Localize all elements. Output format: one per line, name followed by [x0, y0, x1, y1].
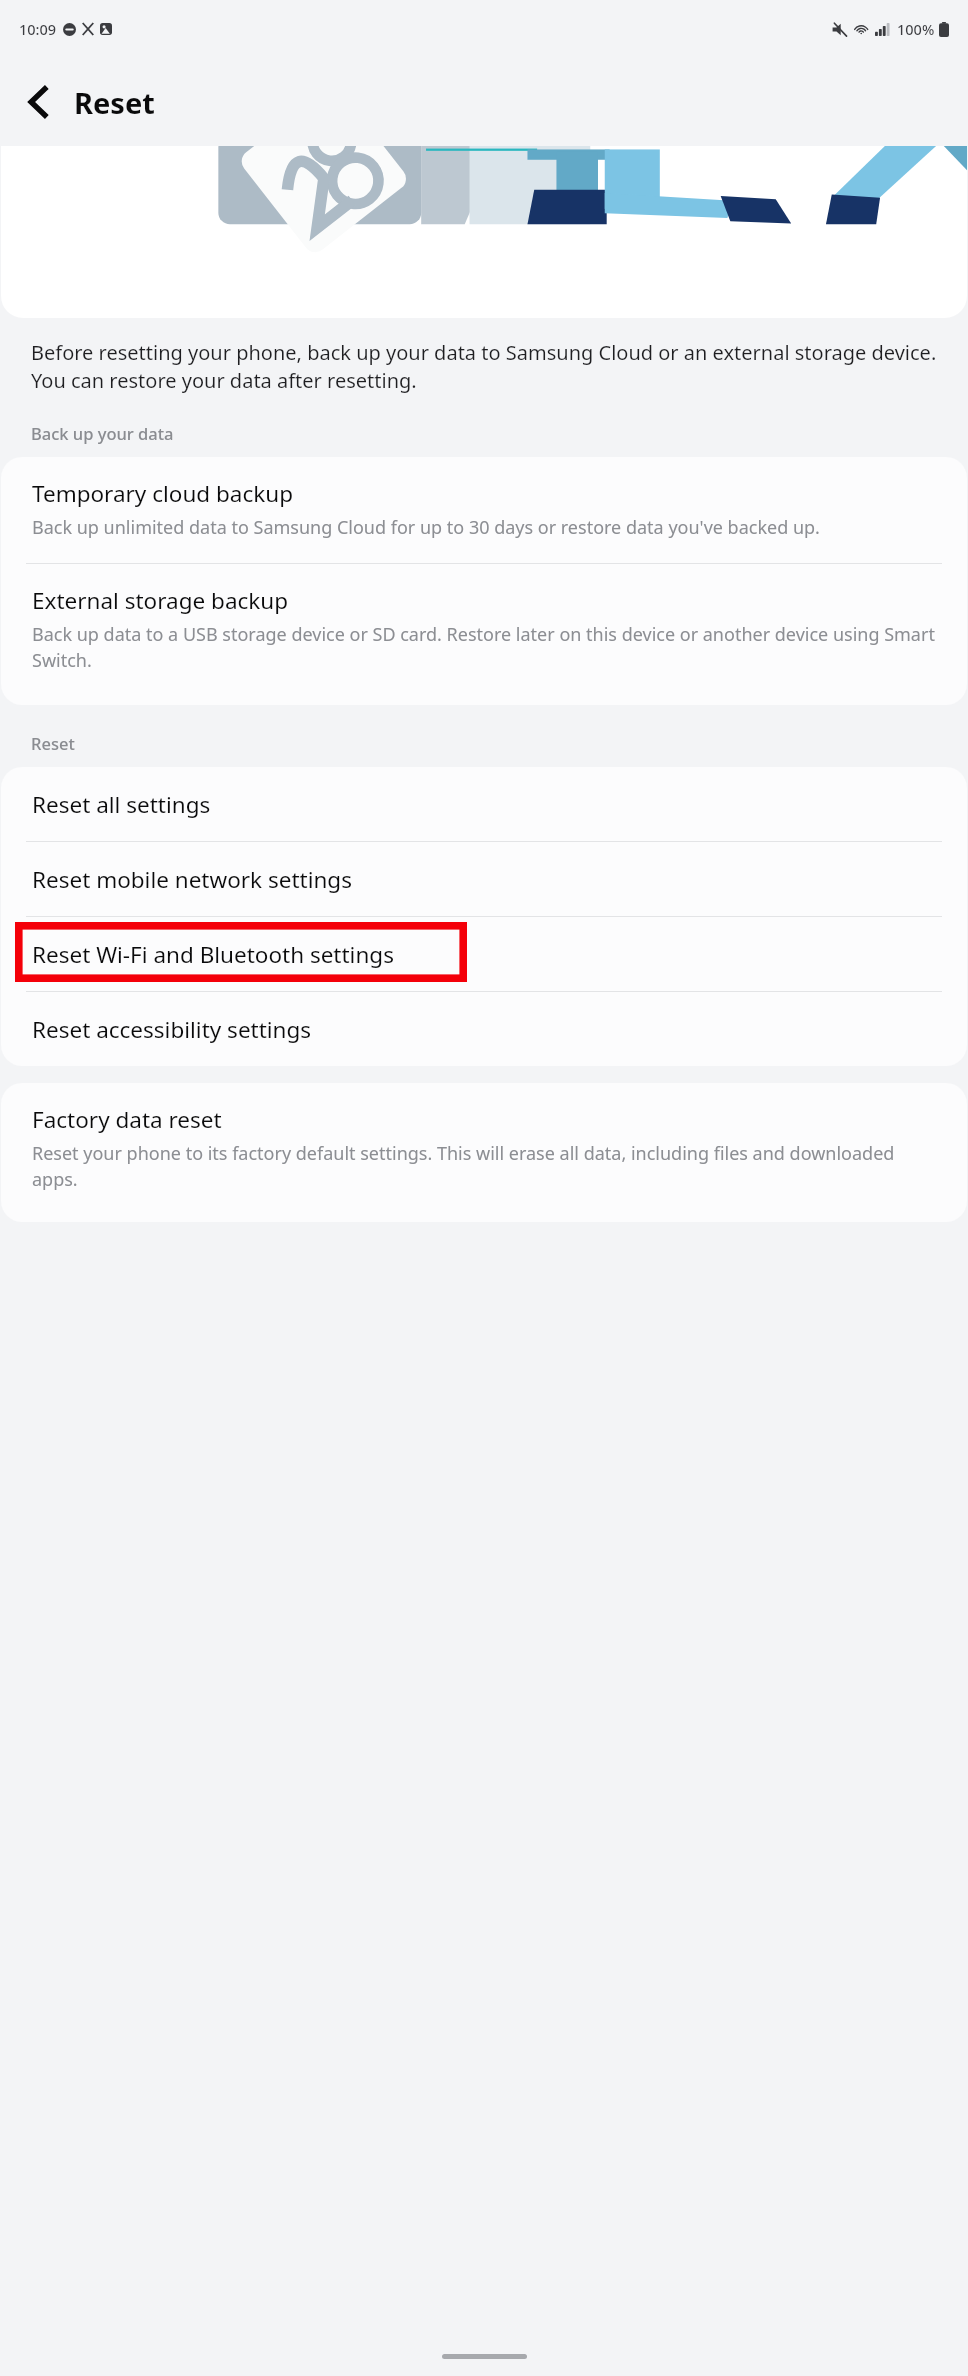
- button[interactable]: Reset all settings: [1, 767, 967, 841]
- staticText: 10:09: [19, 19, 57, 39]
- button[interactable]: Factory data reset: [1, 1083, 967, 1215]
- staticText: Reset: [31, 732, 968, 754]
- button[interactable]: Reset mobile network settings: [1, 842, 967, 916]
- staticText: Before resetting your phone, back up you…: [31, 339, 941, 394]
- staticText: Back up data to a USB storage device or …: [32, 622, 940, 673]
- staticText: Reset mobile network settings: [32, 864, 352, 895]
- staticText: Back up your data: [31, 422, 968, 444]
- button[interactable]: Back: [10, 74, 66, 130]
- staticText: 100%: [897, 19, 935, 39]
- staticText: Back up unlimited data to Samsung Cloud …: [32, 515, 820, 540]
- staticText: Reset your phone to its factory default …: [32, 1141, 940, 1192]
- button[interactable]: Reset accessibility settings: [1, 992, 967, 1066]
- staticText: Reset Wi-Fi and Bluetooth settings: [32, 939, 394, 970]
- staticText: Reset all settings: [32, 789, 211, 820]
- button[interactable]: External storage backup: [1, 564, 967, 696]
- staticText: Reset: [74, 83, 155, 122]
- staticText: Reset accessibility settings: [32, 1014, 312, 1045]
- staticText: External storage backup: [32, 585, 289, 616]
- staticText: Temporary cloud backup: [32, 478, 294, 509]
- button[interactable]: Temporary cloud backup: [1, 457, 967, 563]
- button[interactable]: Reset Wi-Fi and Bluetooth settings: [1, 917, 967, 991]
- staticText: Factory data reset: [32, 1104, 222, 1135]
